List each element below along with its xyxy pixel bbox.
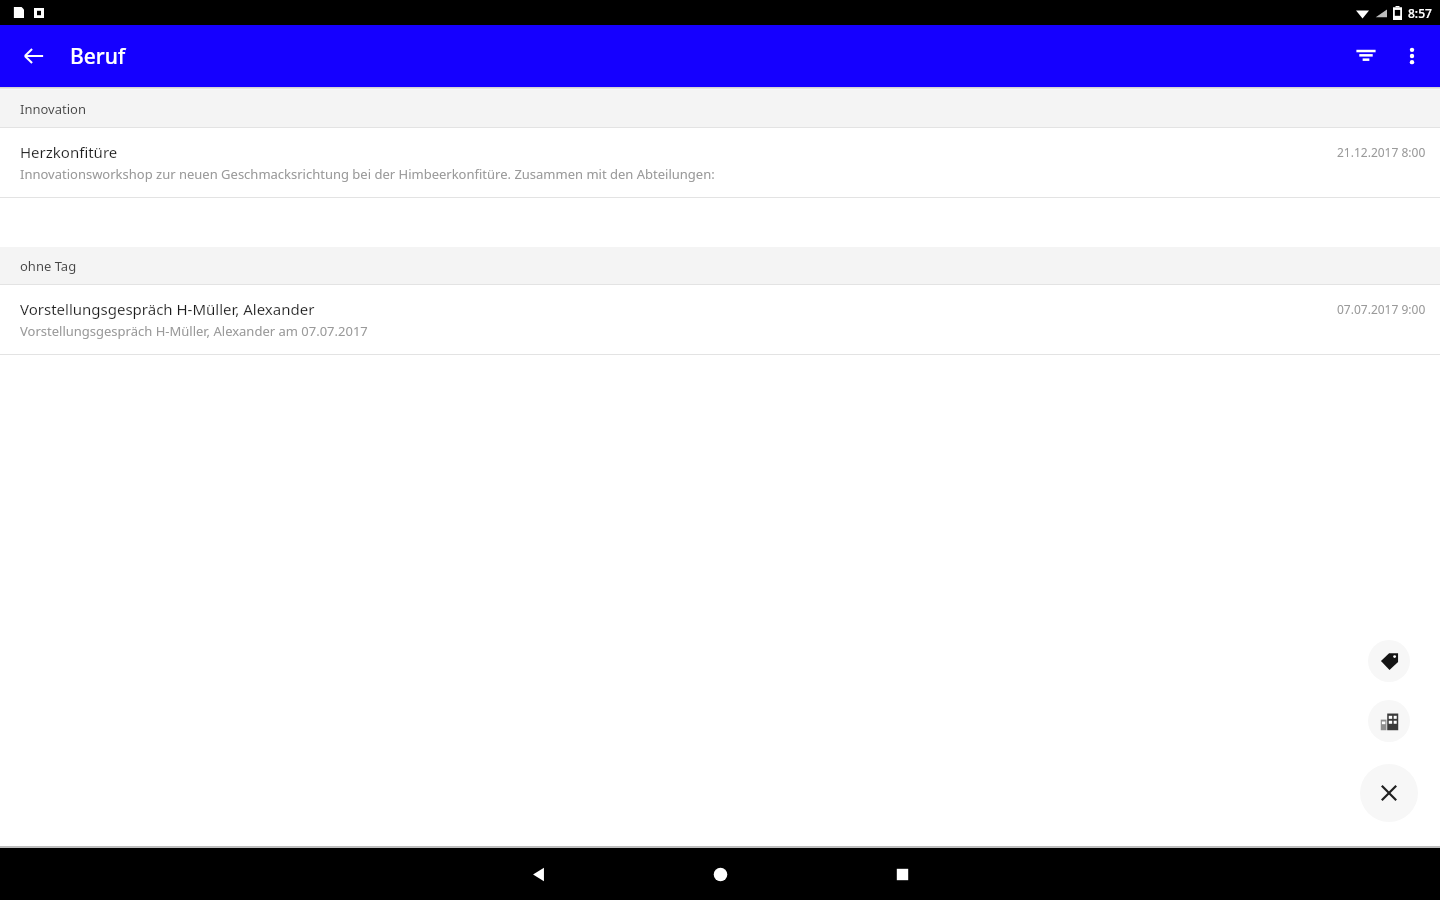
button[interactable]: Filter bbox=[1342, 32, 1390, 80]
staticText: Innovation bbox=[20, 100, 86, 118]
button[interactable]: Recent apps bbox=[811, 848, 993, 900]
button[interactable]: Herzkonfitüre bbox=[0, 128, 1440, 198]
button[interactable]: Add company bbox=[1368, 700, 1410, 742]
button[interactable]: Back bbox=[447, 848, 629, 900]
staticText: 07.07.2017 9:00 bbox=[1337, 301, 1426, 317]
button[interactable]: Back bbox=[10, 32, 58, 80]
button[interactable]: Add tag bbox=[1368, 640, 1410, 682]
staticText: 8:57 bbox=[1408, 5, 1432, 21]
button[interactable]: Innovation bbox=[0, 90, 1440, 127]
button[interactable]: Vorstellungsgespräch H-Müller, Alexander bbox=[0, 285, 1440, 355]
button[interactable]: ohne Tag bbox=[0, 247, 1440, 284]
staticText: Beruf bbox=[70, 42, 126, 71]
staticText: 21.12.2017 8:00 bbox=[1337, 144, 1426, 160]
staticText: ohne Tag bbox=[20, 257, 77, 275]
button[interactable]: Home bbox=[629, 848, 811, 900]
staticText: Vorstellungsgespräch H-Müller, Alexander bbox=[20, 299, 315, 319]
staticText: Innovationsworkshop zur neuen Geschmacks… bbox=[20, 165, 715, 183]
staticText: Vorstellungsgespräch H-Müller, Alexander… bbox=[20, 322, 368, 340]
button[interactable]: More options bbox=[1390, 34, 1434, 78]
staticText: Herzkonfitüre bbox=[20, 142, 118, 162]
button[interactable]: Close bbox=[1360, 764, 1418, 822]
